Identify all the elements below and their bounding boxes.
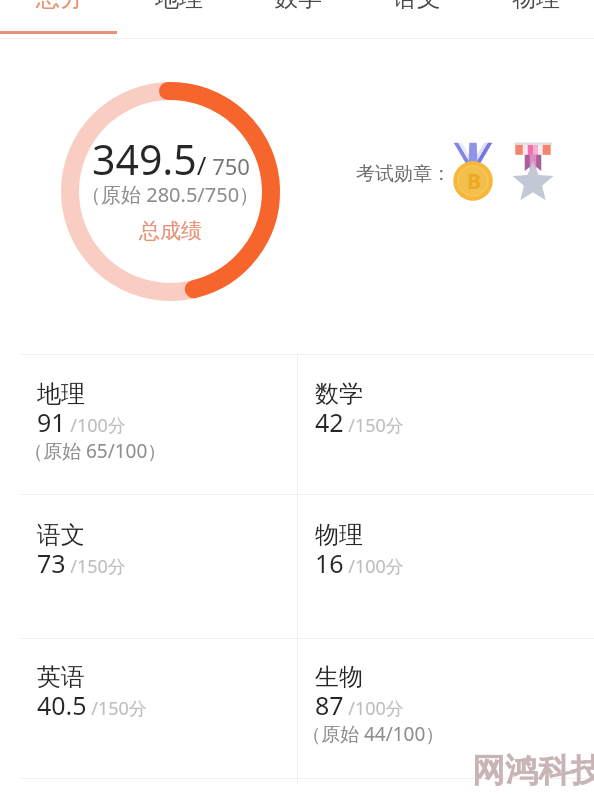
staticText: 地理 [155, 0, 203, 13]
staticText: 总分 [36, 0, 84, 13]
staticText: 物理 [512, 0, 560, 13]
staticText: 91 /100分 [37, 405, 126, 439]
staticText: 英语 [37, 662, 85, 692]
button[interactable]: 数学 [238, 0, 357, 39]
other: Star medal badge [510, 141, 556, 201]
staticText: 40.5 /150分 [37, 688, 147, 722]
other: Gold medal badge [450, 141, 496, 201]
staticText: 网鸿科技 [472, 750, 594, 792]
staticText: 地理 [37, 379, 85, 409]
button[interactable]: 生物 [298, 637, 575, 777]
staticText: 73 /150分 [37, 546, 126, 580]
button[interactable]: 英语 [20, 637, 297, 777]
staticText: 物理 [315, 520, 363, 550]
staticText: 语文 [37, 520, 85, 550]
button[interactable]: 物理 [476, 0, 594, 39]
staticText: （原始 65/100） [24, 438, 167, 464]
staticText: 349.5/ 750 [92, 131, 250, 187]
button[interactable]: 数学 [298, 354, 575, 494]
button[interactable]: 地理 [20, 354, 297, 494]
button[interactable]: 总分 [1, 0, 119, 39]
staticText: （原始 44/100） [302, 721, 445, 747]
button[interactable]: 物理 [298, 495, 575, 635]
staticText: 87 /100分 [315, 688, 404, 722]
staticText: 考试勋章： [356, 162, 451, 186]
staticText: 数学 [315, 379, 363, 409]
staticText: 数学 [274, 0, 322, 13]
button[interactable]: 地理 [119, 0, 238, 39]
staticText: B [467, 167, 481, 196]
staticText: （原始 280.5/750） [81, 181, 260, 208]
button[interactable]: 语文 [357, 0, 476, 39]
staticText: 生物 [315, 662, 363, 692]
staticText: 语文 [393, 0, 441, 13]
button[interactable]: 语文 [20, 495, 297, 635]
staticText: 42 /150分 [315, 405, 404, 439]
staticText: 16 /100分 [315, 546, 404, 580]
staticText: 总成绩 [139, 218, 202, 244]
